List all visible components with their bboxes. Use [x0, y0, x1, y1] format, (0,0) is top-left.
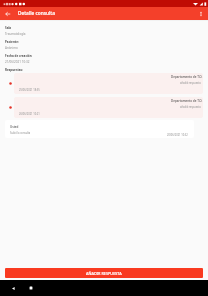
button[interactable]: Atrás — [7, 282, 19, 294]
staticText: 21/06/2021 10:32 — [5, 60, 30, 64]
staticText: Respuestas: — [5, 68, 23, 72]
staticText: añadió respuesta — [180, 105, 201, 108]
staticText: AÑADIR RESPUESTA — [86, 271, 122, 276]
staticText: Anónimo — [5, 46, 18, 50]
staticText: 20/06/2021 10:32 — [167, 133, 188, 136]
button[interactable]: Más opciones — [194, 7, 208, 20]
button[interactable]: 26/06/2021 10:21 — [14, 97, 203, 118]
staticText: Subió la consulta — [10, 131, 31, 134]
button[interactable]: AÑADIR RESPUESTA — [5, 268, 203, 278]
staticText: Traumatología — [5, 32, 26, 36]
staticText: 26/06/2021 10:21 — [19, 112, 40, 115]
button[interactable]: Inicio — [25, 282, 37, 294]
staticText: Usted — [10, 125, 19, 129]
button[interactable]: Navegar hacia arriba — [0, 7, 18, 20]
staticText: Paciente: — [5, 40, 19, 44]
button[interactable]: 25/06/2021 18:55 — [14, 73, 203, 94]
staticText: Detalle consulta — [18, 10, 55, 17]
staticText: Fecha de creación — [5, 54, 32, 58]
button[interactable]: Usted — [5, 120, 194, 138]
staticText: Sala — [5, 26, 12, 30]
staticText: Departamento de T.O. — [171, 75, 203, 79]
staticText: Departamento de T.O. — [171, 99, 203, 103]
staticText: 25/06/2021 18:55 — [19, 88, 40, 91]
staticText: añadió respuesta — [180, 81, 201, 84]
